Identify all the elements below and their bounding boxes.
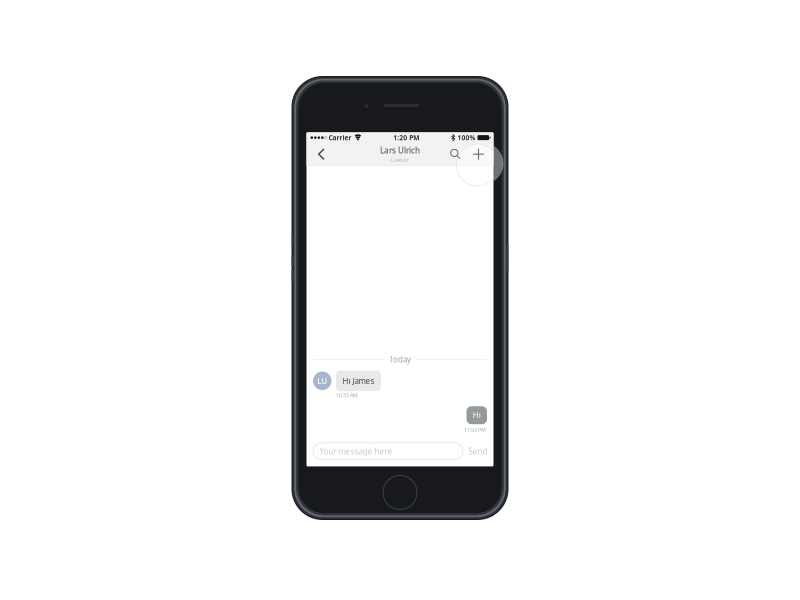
staticText: 100% xyxy=(457,133,475,142)
staticText: Today xyxy=(389,354,411,365)
staticText: 10:33 AM xyxy=(336,392,358,399)
staticText: 11:53 PM xyxy=(464,426,486,433)
staticText: Hi James xyxy=(342,375,374,386)
staticText: LU xyxy=(317,375,327,386)
button[interactable]: New message xyxy=(466,143,490,165)
button[interactable]: Your message here xyxy=(313,443,463,460)
staticText: Hi xyxy=(473,410,481,420)
button[interactable]: Send xyxy=(468,446,487,457)
button[interactable]: Back xyxy=(308,143,334,165)
staticText: Send xyxy=(468,446,487,457)
staticText: Lars Ulrich xyxy=(380,145,420,156)
staticText: Carrier xyxy=(329,133,352,142)
button[interactable]: Search xyxy=(444,143,466,165)
staticText: 1:20 PM xyxy=(393,133,419,142)
staticText: Your message here xyxy=(319,446,392,457)
staticText: Lawyer xyxy=(391,156,409,163)
